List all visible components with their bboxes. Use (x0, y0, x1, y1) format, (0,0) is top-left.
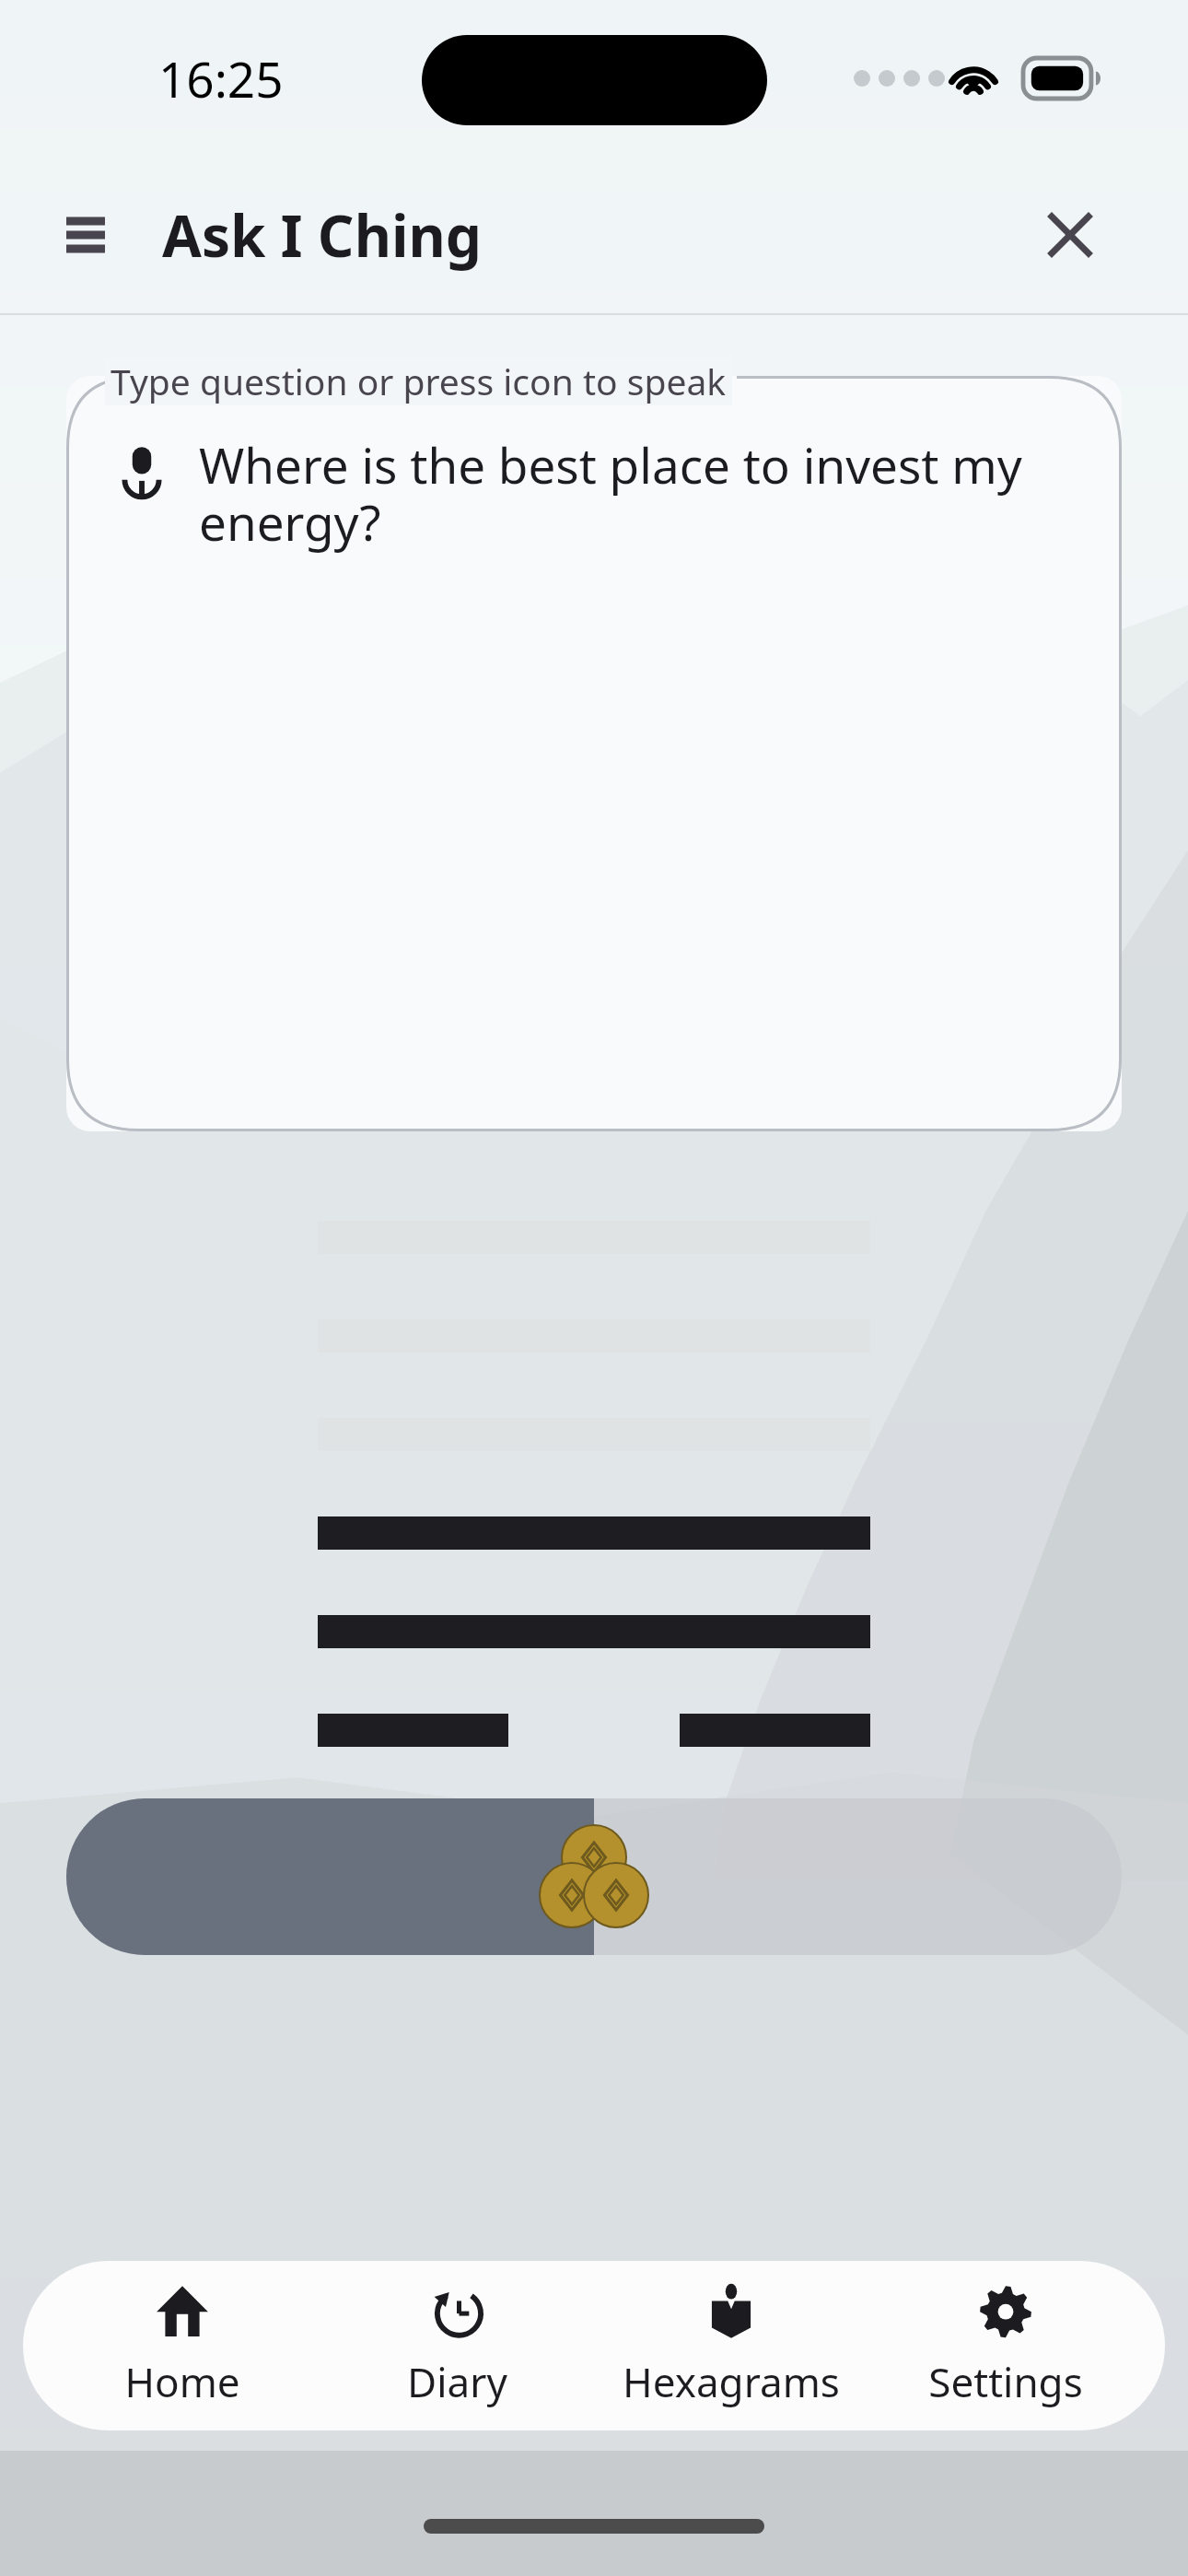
button[interactable]: Diary (342, 2261, 572, 2430)
button[interactable]: Hexagrams (616, 2261, 846, 2430)
button[interactable]: Menu (44, 193, 127, 276)
button[interactable]: Settings (891, 2261, 1121, 2430)
button[interactable]: Home (67, 2261, 297, 2430)
staticText: Diary (407, 2354, 507, 2409)
staticText: Ask I Ching (162, 196, 482, 274)
button[interactable]: Close (1026, 191, 1114, 279)
staticText: Home (124, 2354, 240, 2409)
button[interactable] (66, 376, 1122, 1131)
button[interactable] (66, 1798, 1122, 1955)
button[interactable]: Speak (101, 431, 182, 512)
staticText: Settings (928, 2354, 1083, 2409)
staticText: Type question or press icon to speak (111, 357, 727, 405)
staticText: 16:25 (158, 45, 284, 111)
staticText: Hexagrams (623, 2354, 840, 2409)
staticText: Where is the best place to invest my ene… (199, 431, 1081, 555)
